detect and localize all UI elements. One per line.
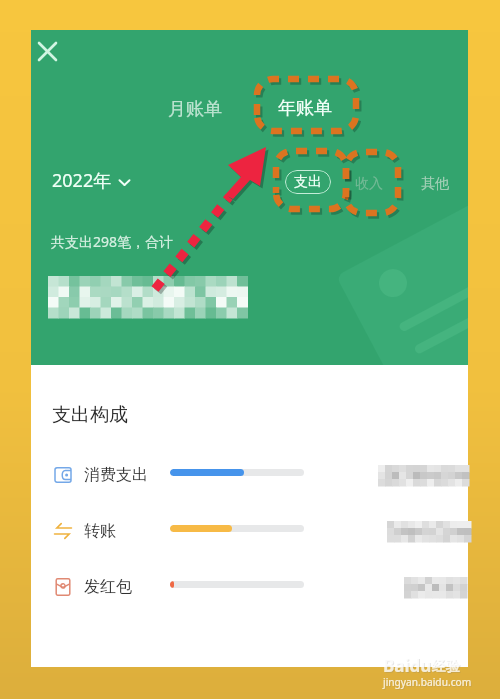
staticText: 支出构成 bbox=[52, 403, 128, 427]
staticText: 2022年 bbox=[52, 168, 112, 193]
staticText: 收入 bbox=[355, 175, 383, 193]
staticText: jingyan.baidu.com bbox=[383, 675, 472, 689]
staticText: Baidu bbox=[384, 655, 433, 678]
button[interactable] bbox=[31, 514, 468, 554]
staticText: 转账 bbox=[84, 521, 116, 541]
staticText: 其他 bbox=[421, 175, 449, 193]
button[interactable] bbox=[31, 570, 468, 610]
button[interactable]: 其他 bbox=[419, 173, 451, 195]
button[interactable]: 支出 bbox=[285, 170, 331, 194]
staticText: 共支出298笔，合计 bbox=[51, 232, 174, 251]
button[interactable]: 收入 bbox=[353, 173, 385, 195]
staticText: 年账单 bbox=[278, 97, 332, 120]
button[interactable] bbox=[31, 458, 468, 498]
staticText: 支出 bbox=[294, 173, 322, 191]
staticText: 经验 bbox=[432, 658, 460, 676]
staticText: 经验 bbox=[433, 659, 461, 677]
staticText: 月账单 bbox=[168, 98, 222, 121]
button[interactable]: 月账单 bbox=[160, 94, 230, 125]
button[interactable]: 年账单 bbox=[270, 93, 340, 124]
staticText: jingyan.baidu.com bbox=[384, 676, 473, 690]
staticText: Baidu bbox=[383, 654, 432, 677]
staticText: 发红包 bbox=[84, 577, 132, 597]
staticText: 消费支出 bbox=[84, 465, 148, 485]
button[interactable]: 2022年 bbox=[48, 164, 134, 197]
button[interactable]: Close bbox=[29, 33, 65, 69]
